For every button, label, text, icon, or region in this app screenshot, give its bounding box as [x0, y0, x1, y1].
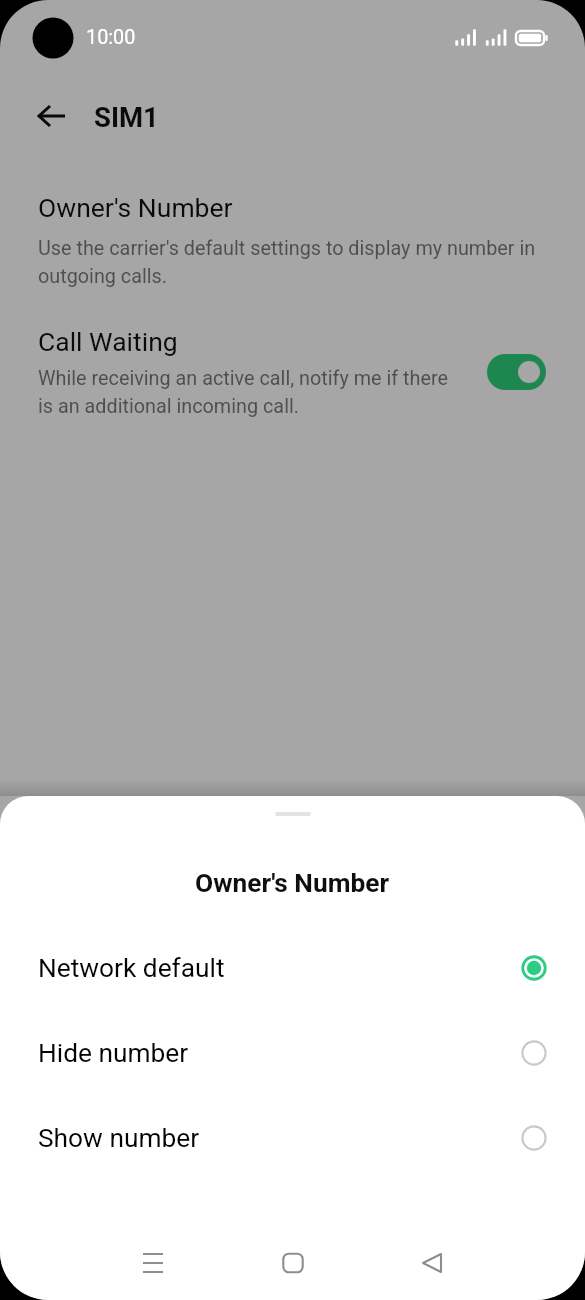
- staticText: SIM1: [94, 101, 159, 133]
- button[interactable]: Back: [26, 90, 78, 142]
- staticText: Owner's Number: [195, 868, 390, 899]
- button[interactable]: Network default: [0, 939, 585, 997]
- button[interactable]: Recents: [121, 1231, 185, 1295]
- button[interactable]: Call Waiting: [0, 326, 585, 418]
- button[interactable]: Call waiting toggle: [487, 354, 546, 390]
- staticText: Owner's Number: [38, 192, 233, 223]
- button[interactable]: Back: [400, 1231, 464, 1295]
- button[interactable]: Home: [261, 1231, 325, 1295]
- button[interactable]: Hide number: [0, 1024, 585, 1082]
- staticText: Hide number: [38, 1038, 520, 1069]
- staticText: Show number: [38, 1123, 520, 1154]
- staticText: 10:00: [86, 26, 136, 49]
- button[interactable]: Show number: [0, 1109, 585, 1167]
- button[interactable]: Owner's Number: [0, 192, 585, 288]
- staticText: Use the carrier's default settings to di…: [38, 237, 548, 288]
- staticText: Call Waiting: [38, 326, 178, 357]
- staticText: While receiving an active call, notify m…: [38, 367, 457, 418]
- staticText: Network default: [38, 953, 520, 984]
